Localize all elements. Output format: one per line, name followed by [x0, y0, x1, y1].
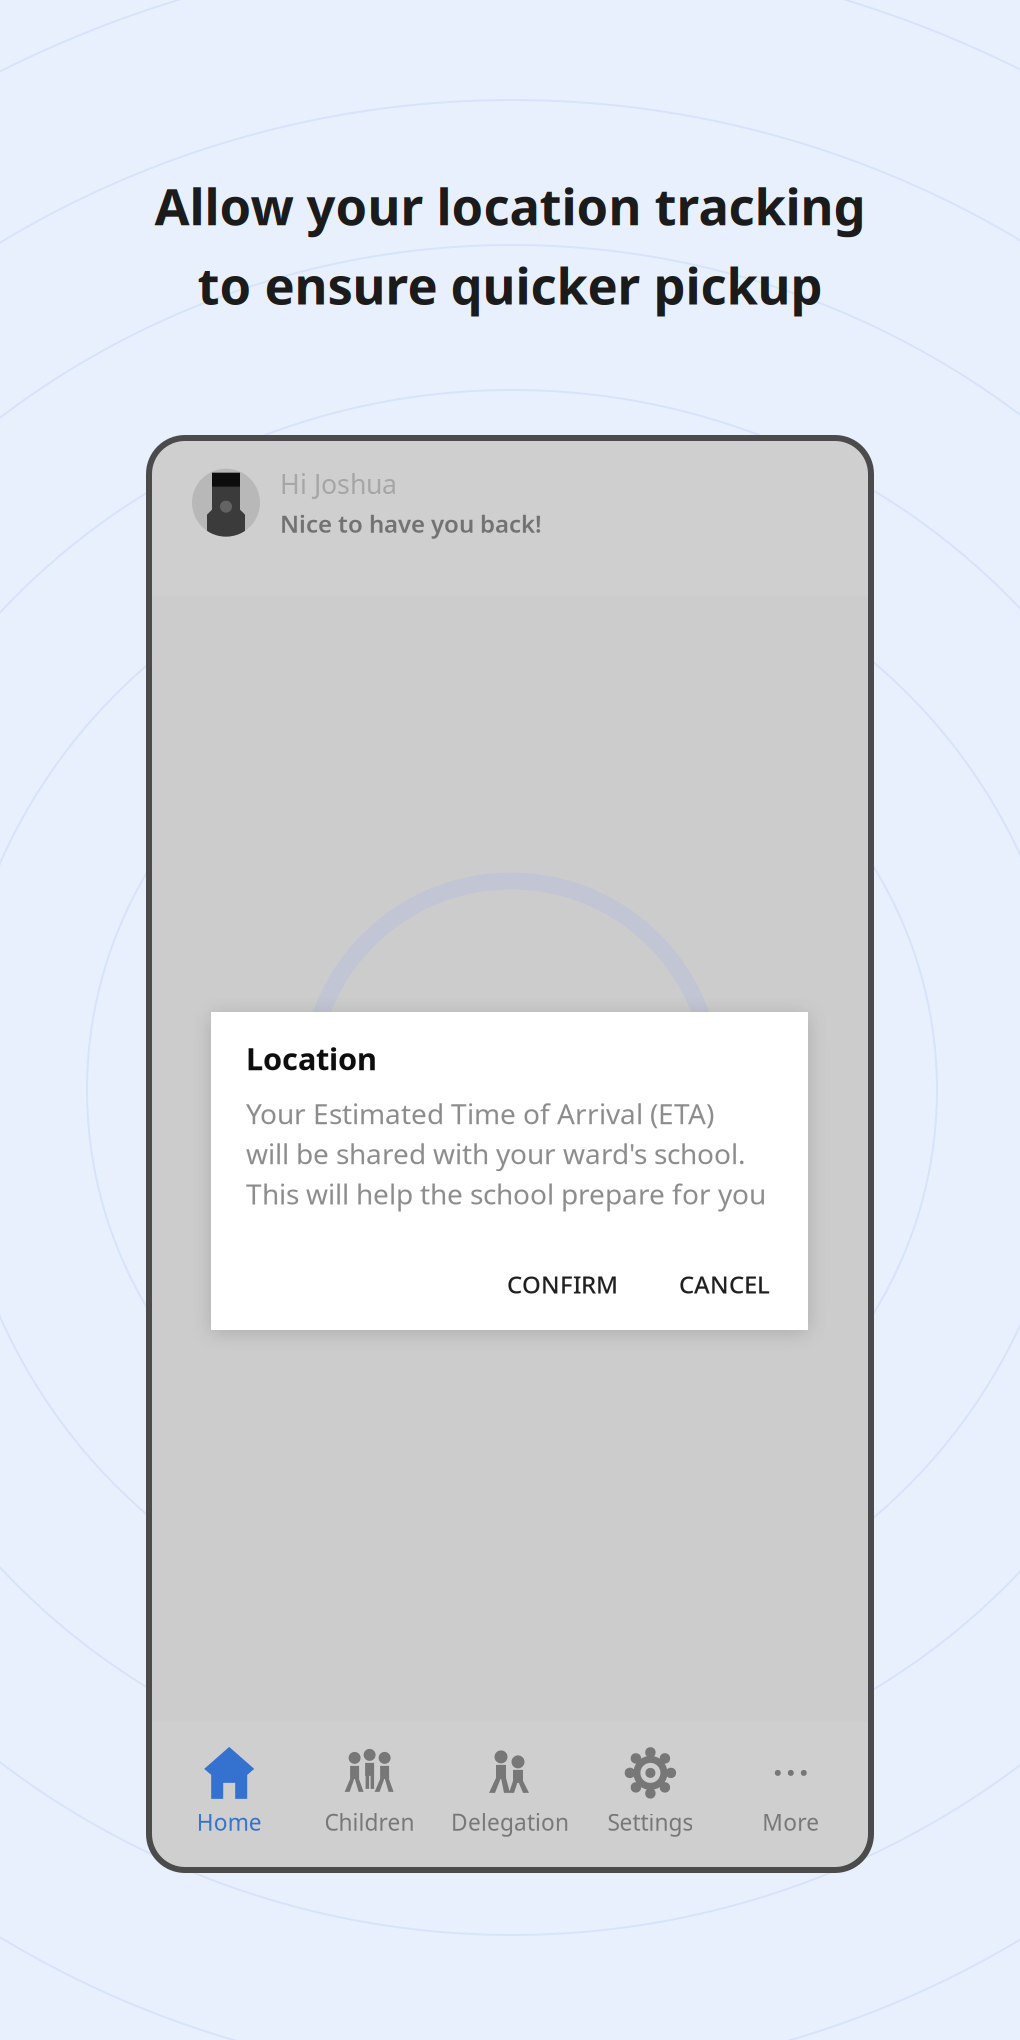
staticText: Allow your location tracking — [154, 172, 865, 239]
staticText: to ensure quicker pickup — [197, 251, 822, 319]
button[interactable]: Children — [299, 1747, 440, 1837]
button[interactable]: Delegation — [440, 1747, 580, 1837]
staticText: will be shared with your ward's school. — [246, 1135, 746, 1172]
staticText: CANCEL — [679, 1268, 770, 1300]
staticText: Nice to have you back! — [280, 507, 542, 539]
button[interactable]: Settings — [580, 1747, 721, 1837]
button[interactable]: CANCEL — [676, 1258, 773, 1310]
staticText: Children — [325, 1807, 415, 1837]
staticText: CONFIRM — [507, 1268, 618, 1300]
button[interactable]: More — [721, 1747, 861, 1837]
staticText: More — [762, 1807, 819, 1837]
staticText: This will help the school prepare for yo… — [246, 1175, 766, 1212]
staticText: Location — [246, 1038, 377, 1079]
staticText: Settings — [607, 1807, 693, 1837]
staticText: Delegation — [451, 1807, 569, 1837]
staticText: Your Estimated Time of Arrival (ETA) — [246, 1095, 714, 1132]
staticText: Hi Joshua — [280, 466, 397, 501]
button[interactable]: Home — [159, 1747, 299, 1837]
button[interactable]: CONFIRM — [504, 1258, 621, 1310]
staticText: Home — [197, 1807, 262, 1837]
